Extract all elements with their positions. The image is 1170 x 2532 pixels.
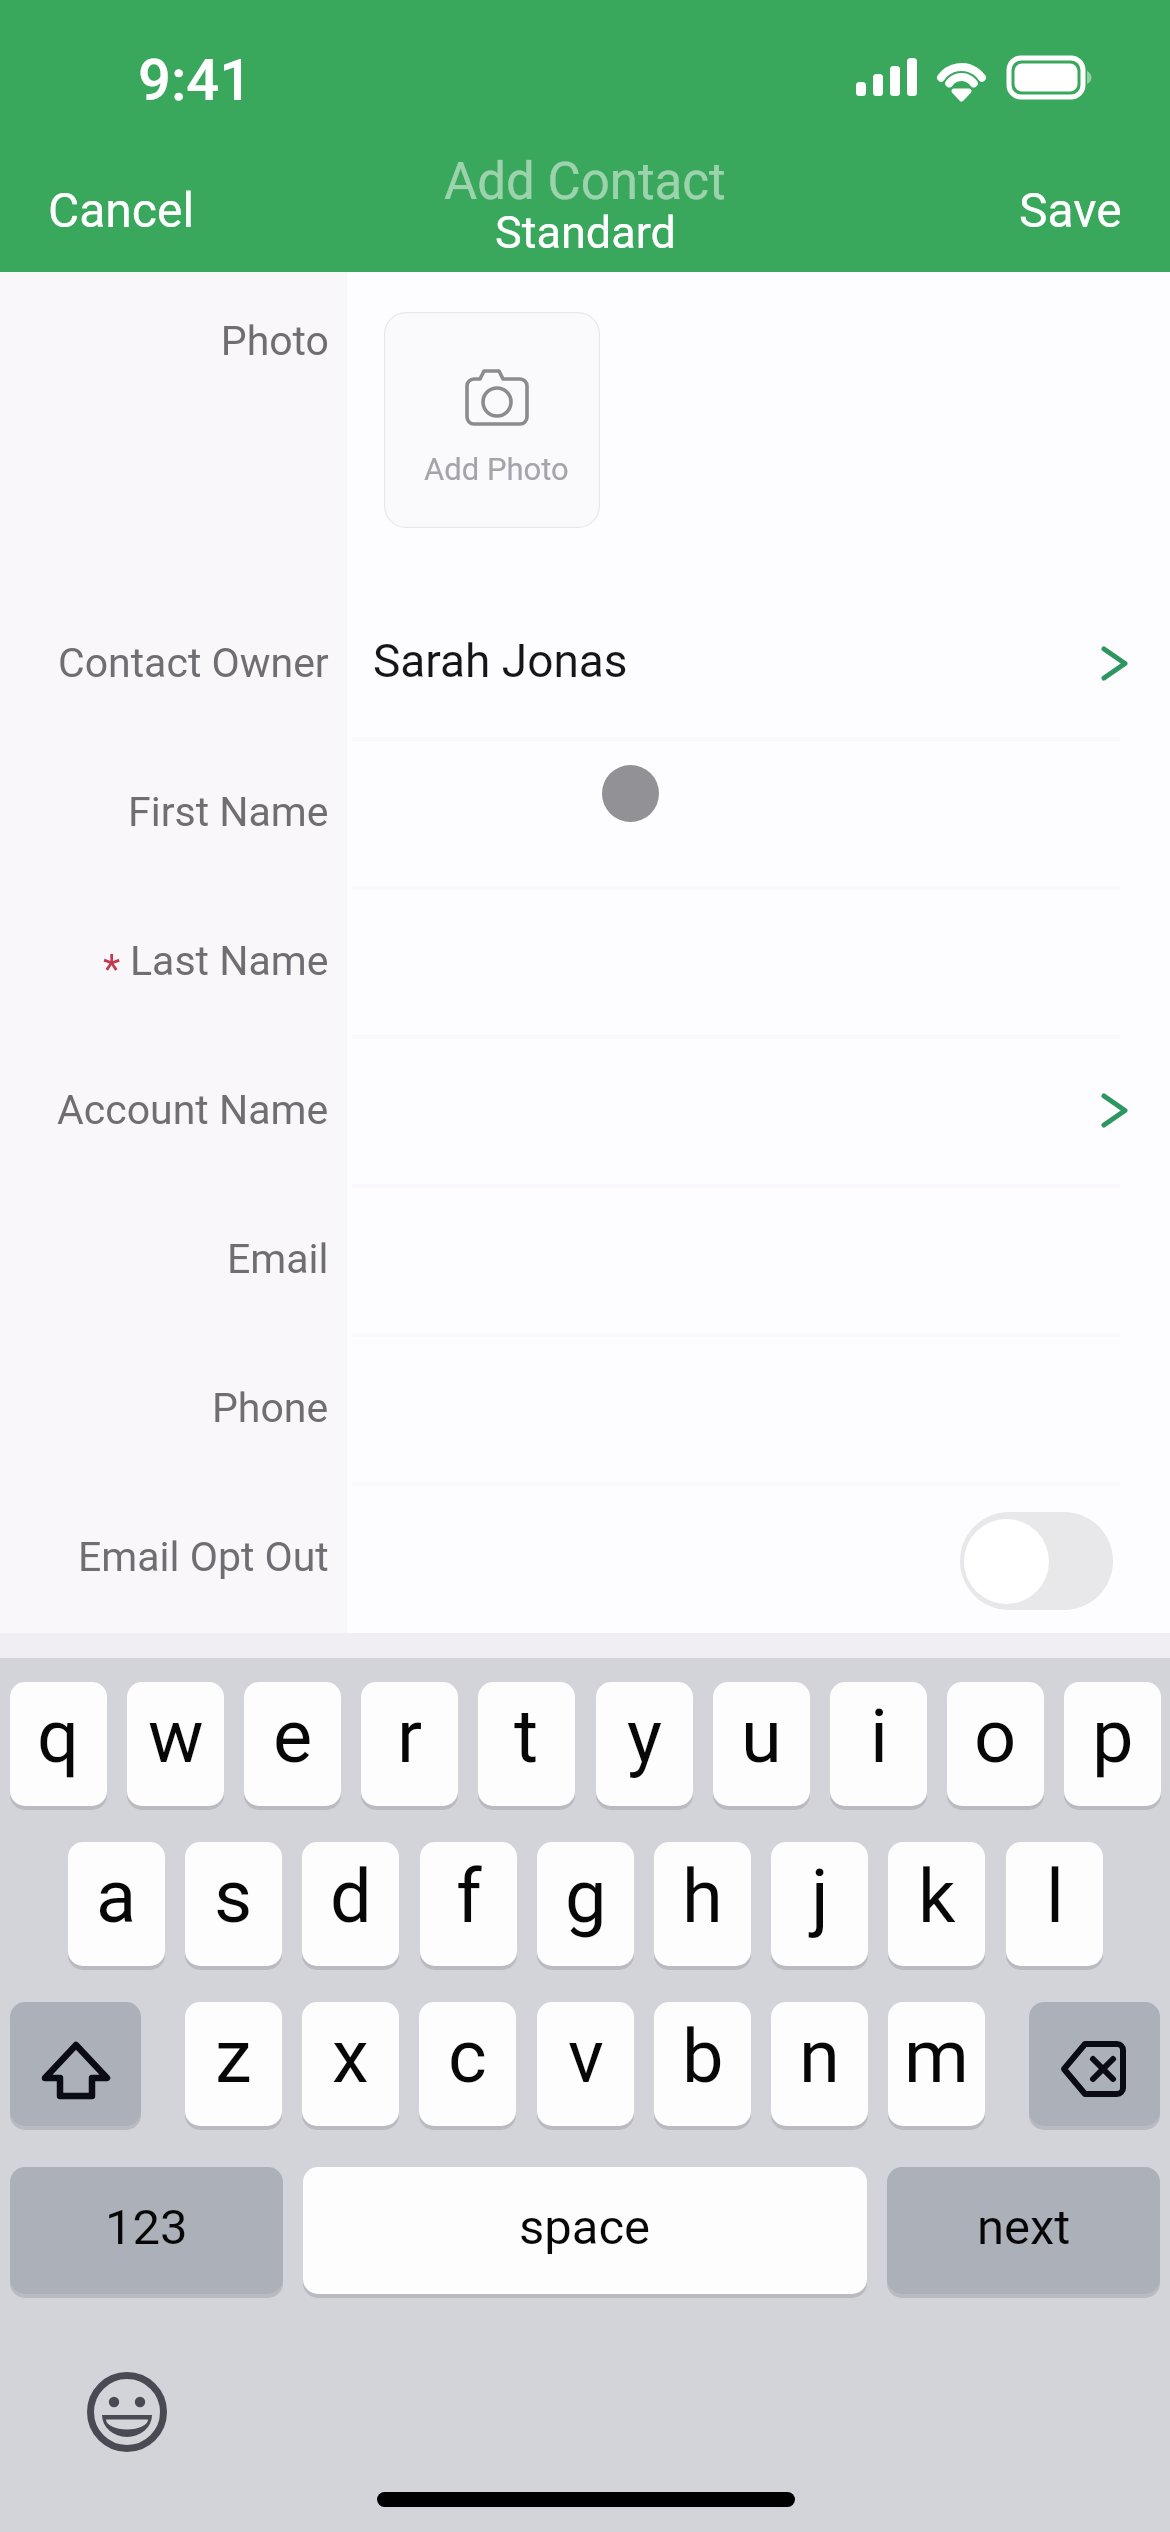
button[interactable]: u: [713, 1682, 810, 1806]
button[interactable]: *: [0, 890, 1170, 1039]
button[interactable]: k: [888, 1842, 985, 1966]
button[interactable]: m: [888, 2002, 985, 2126]
button[interactable]: x: [302, 2002, 399, 2126]
staticText: b: [682, 2013, 724, 2100]
staticText: Cancel: [48, 182, 195, 238]
button[interactable]: Email Opt Out: [0, 1486, 1170, 1635]
button[interactable]: t: [478, 1682, 575, 1806]
staticText: w: [148, 1693, 204, 1780]
staticText: Save: [1019, 182, 1122, 238]
staticText: f: [456, 1853, 482, 1940]
staticText: n: [799, 2013, 840, 2100]
staticText: l: [1046, 1853, 1064, 1940]
button[interactable]: a: [68, 1842, 165, 1966]
staticText: x: [332, 2013, 369, 2100]
staticText: e: [273, 1693, 313, 1780]
staticText: r: [397, 1693, 423, 1780]
button[interactable]: Shift: [10, 2002, 141, 2126]
button[interactable]: n: [771, 2002, 868, 2126]
button[interactable]: next: [887, 2167, 1160, 2294]
button[interactable]: Account Name: [0, 1039, 1170, 1188]
button[interactable]: y: [596, 1682, 693, 1806]
button[interactable]: Email Opt Out toggle: [960, 1512, 1113, 1610]
button[interactable]: space: [303, 2167, 867, 2294]
staticText: v: [568, 2013, 604, 2100]
button[interactable]: 123: [10, 2167, 283, 2294]
staticText: u: [741, 1693, 782, 1780]
staticText: Sarah Jonas: [373, 634, 628, 688]
staticText: m: [904, 2013, 969, 2100]
button[interactable]: p: [1064, 1682, 1161, 1806]
staticText: next: [977, 2199, 1071, 2256]
staticText: p: [1092, 1693, 1134, 1780]
staticText: Add Contact: [444, 152, 726, 212]
staticText: Add Photo: [424, 451, 569, 487]
button[interactable]: e: [244, 1682, 341, 1806]
button[interactable]: First Name: [0, 741, 1170, 890]
button[interactable]: r: [361, 1682, 458, 1806]
button[interactable]: v: [537, 2002, 634, 2126]
button[interactable]: s: [185, 1842, 282, 1966]
button[interactable]: Add Photo: [384, 312, 600, 528]
staticText: 9:41: [138, 46, 253, 114]
staticText: *: [103, 946, 121, 993]
staticText: Photo: [0, 317, 329, 365]
button[interactable]: g: [537, 1842, 634, 1966]
button[interactable]: c: [419, 2002, 516, 2126]
staticText: Account Name: [57, 1086, 329, 1134]
button[interactable]: h: [654, 1842, 751, 1966]
staticText: z: [215, 2013, 252, 2100]
button[interactable]: w: [127, 1682, 224, 1806]
button[interactable]: Contact Owner: [0, 592, 1170, 741]
staticText: o: [974, 1693, 1017, 1780]
staticText: 123: [105, 2199, 188, 2256]
staticText: g: [565, 1853, 607, 1940]
staticText: a: [96, 1853, 137, 1940]
button[interactable]: Cancel: [32, 170, 211, 250]
button[interactable]: o: [947, 1682, 1044, 1806]
button[interactable]: z: [185, 2002, 282, 2126]
button[interactable]: j: [771, 1842, 868, 1966]
staticText: Phone: [212, 1384, 329, 1432]
staticText: Contact Owner: [58, 639, 329, 687]
staticText: Email: [227, 1235, 329, 1283]
staticText: First Name: [128, 788, 329, 836]
staticText: j: [811, 1853, 829, 1940]
staticText: Last Name: [130, 937, 329, 985]
staticText: h: [682, 1853, 723, 1940]
staticText: k: [918, 1853, 956, 1940]
button[interactable]: Backspace: [1029, 2002, 1160, 2126]
staticText: space: [519, 2199, 651, 2256]
button[interactable]: Save: [1003, 170, 1138, 250]
staticText: i: [870, 1693, 888, 1780]
staticText: d: [330, 1853, 372, 1940]
button[interactable]: l: [1006, 1842, 1103, 1966]
button[interactable]: q: [10, 1682, 107, 1806]
button[interactable]: d: [302, 1842, 399, 1966]
button[interactable]: Email: [0, 1188, 1170, 1337]
button[interactable]: Emoji keyboard: [82, 2367, 172, 2457]
staticText: t: [514, 1693, 539, 1780]
staticText: Standard: [495, 206, 676, 259]
staticText: Email Opt Out: [78, 1533, 329, 1581]
button[interactable]: Phone: [0, 1337, 1170, 1486]
button[interactable]: f: [420, 1842, 517, 1966]
staticText: s: [214, 1853, 253, 1940]
staticText: y: [627, 1693, 663, 1780]
button[interactable]: b: [654, 2002, 751, 2126]
button[interactable]: i: [830, 1682, 927, 1806]
staticText: q: [37, 1693, 80, 1780]
staticText: c: [448, 2013, 487, 2100]
